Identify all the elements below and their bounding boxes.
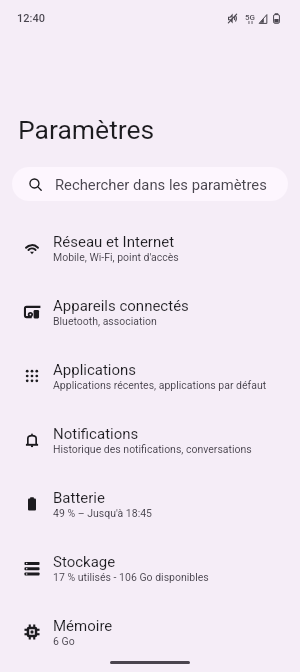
other: Batterie: [272, 13, 281, 24]
staticText: 49 % – Jusqu'à 18:45: [53, 507, 152, 519]
button[interactable]: Appareils connectés: [0, 280, 300, 344]
staticText: Stockage: [53, 553, 116, 571]
button[interactable]: Applications: [0, 344, 300, 408]
button[interactable]: Rechercher dans les paramètres: [12, 167, 288, 201]
staticText: 6 Go: [53, 635, 75, 647]
staticText: 17 % utilisés - 106 Go disponibles: [53, 571, 209, 583]
staticText: Mémoire: [53, 617, 113, 635]
button[interactable]: Réseau et Internet: [0, 216, 300, 280]
button[interactable]: Notifications: [0, 408, 300, 472]
staticText: Notifications: [53, 425, 139, 443]
staticText: Appareils connectés: [53, 297, 189, 315]
other: Signal mobile: [259, 14, 267, 24]
staticText: Applications récentes, applications par …: [53, 379, 267, 391]
staticText: Réseau et Internet: [53, 233, 175, 251]
staticText: Rechercher dans les paramètres: [55, 176, 267, 193]
button[interactable]: Stockage: [0, 536, 300, 600]
button[interactable]: Batterie: [0, 472, 300, 536]
button[interactable]: Mémoire: [0, 600, 300, 664]
staticText: Mobile, Wi-Fi, point d'accès: [53, 251, 179, 263]
staticText: Bluetooth, association: [53, 315, 157, 327]
staticText: Paramètres: [18, 114, 155, 145]
staticText: 5G: [245, 13, 255, 22]
staticText: Applications: [53, 361, 137, 379]
staticText: Historique des notifications, conversati…: [53, 443, 252, 455]
other: Sonnerie désactivée: [228, 13, 237, 24]
staticText: Batterie: [53, 489, 105, 507]
staticText: 12:40: [17, 12, 45, 25]
